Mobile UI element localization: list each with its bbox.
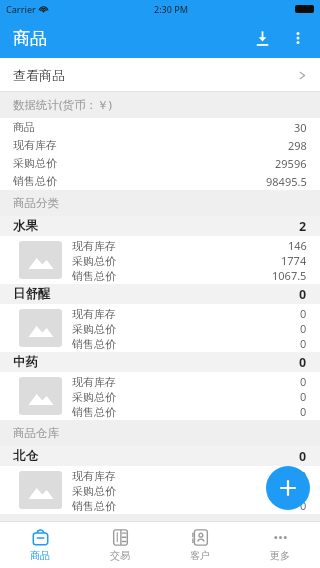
staticText: 采购总价 [72,254,116,268]
staticText: 日舒醒 [13,286,51,302]
staticText: 中药 [13,354,38,370]
staticText: 北仓 [13,448,38,464]
staticText: 销售总价 [72,337,116,351]
staticText: 0 [300,498,307,513]
staticText: 销售总价 [72,269,116,283]
staticText: 0 [300,321,307,336]
staticText: 2:30 PM [154,3,188,15]
staticText: 采购总价 [13,156,57,170]
staticText: 0 [300,306,307,321]
button[interactable]: 商品 [0,522,80,568]
staticText: 298 [288,138,307,153]
staticText: 商品 [13,120,35,134]
staticText: 0 [300,374,307,389]
staticText: 采购总价 [72,484,116,498]
staticText: 采购总价 [72,390,116,404]
staticText: 0 [299,448,307,465]
staticText: 0 [299,354,307,371]
staticText: 0 [300,404,307,419]
button[interactable]: 日舒醒 [0,284,320,352]
button[interactable]: 交易 [80,522,160,568]
staticText: 更多 [270,549,290,562]
staticText: 现有库存 [72,307,116,321]
staticText: 销售总价 [13,174,57,188]
staticText: 30 [294,120,307,135]
staticText: 1774 [281,253,307,268]
staticText: 现有库存 [13,138,57,152]
button[interactable]: 客户 [160,522,240,568]
staticText: 现有库存 [72,469,116,483]
staticText: 0 [300,336,307,351]
button[interactable]: 更多 [240,522,320,568]
staticText: 1067.5 [272,268,307,283]
staticText: Carrier [6,3,36,15]
staticText: 0 [299,286,307,303]
staticText: 数据统计(货币：￥) [13,97,112,113]
staticText: 商品 [13,28,47,49]
staticText: 146 [288,238,307,253]
staticText: 交易 [110,549,130,562]
button[interactable]: Add [266,466,310,510]
button[interactable]: 查看商品 [0,58,320,92]
staticText: 2 [299,218,307,235]
staticText: 采购总价 [72,322,116,336]
staticText: 销售总价 [72,405,116,419]
staticText: 商品仓库 [13,426,59,440]
button[interactable]: More options [280,20,316,56]
staticText: 商品分类 [13,196,59,210]
button[interactable]: Download [244,20,280,56]
staticText: 0 [300,389,307,404]
staticText: 商品 [30,549,50,562]
staticText: 现有库存 [72,375,116,389]
button[interactable]: 北仓 [0,446,320,514]
staticText: 水果 [13,218,38,234]
button[interactable]: 中药 [0,352,320,420]
staticText: 0 [300,468,307,483]
staticText: 客户 [190,549,210,562]
staticText: 98495.5 [266,174,307,189]
staticText: 查看商品 [13,67,65,83]
button[interactable]: 水果 [0,216,320,284]
staticText: 29596 [275,156,307,171]
staticText: 销售总价 [72,499,116,513]
staticText: 现有库存 [72,239,116,253]
